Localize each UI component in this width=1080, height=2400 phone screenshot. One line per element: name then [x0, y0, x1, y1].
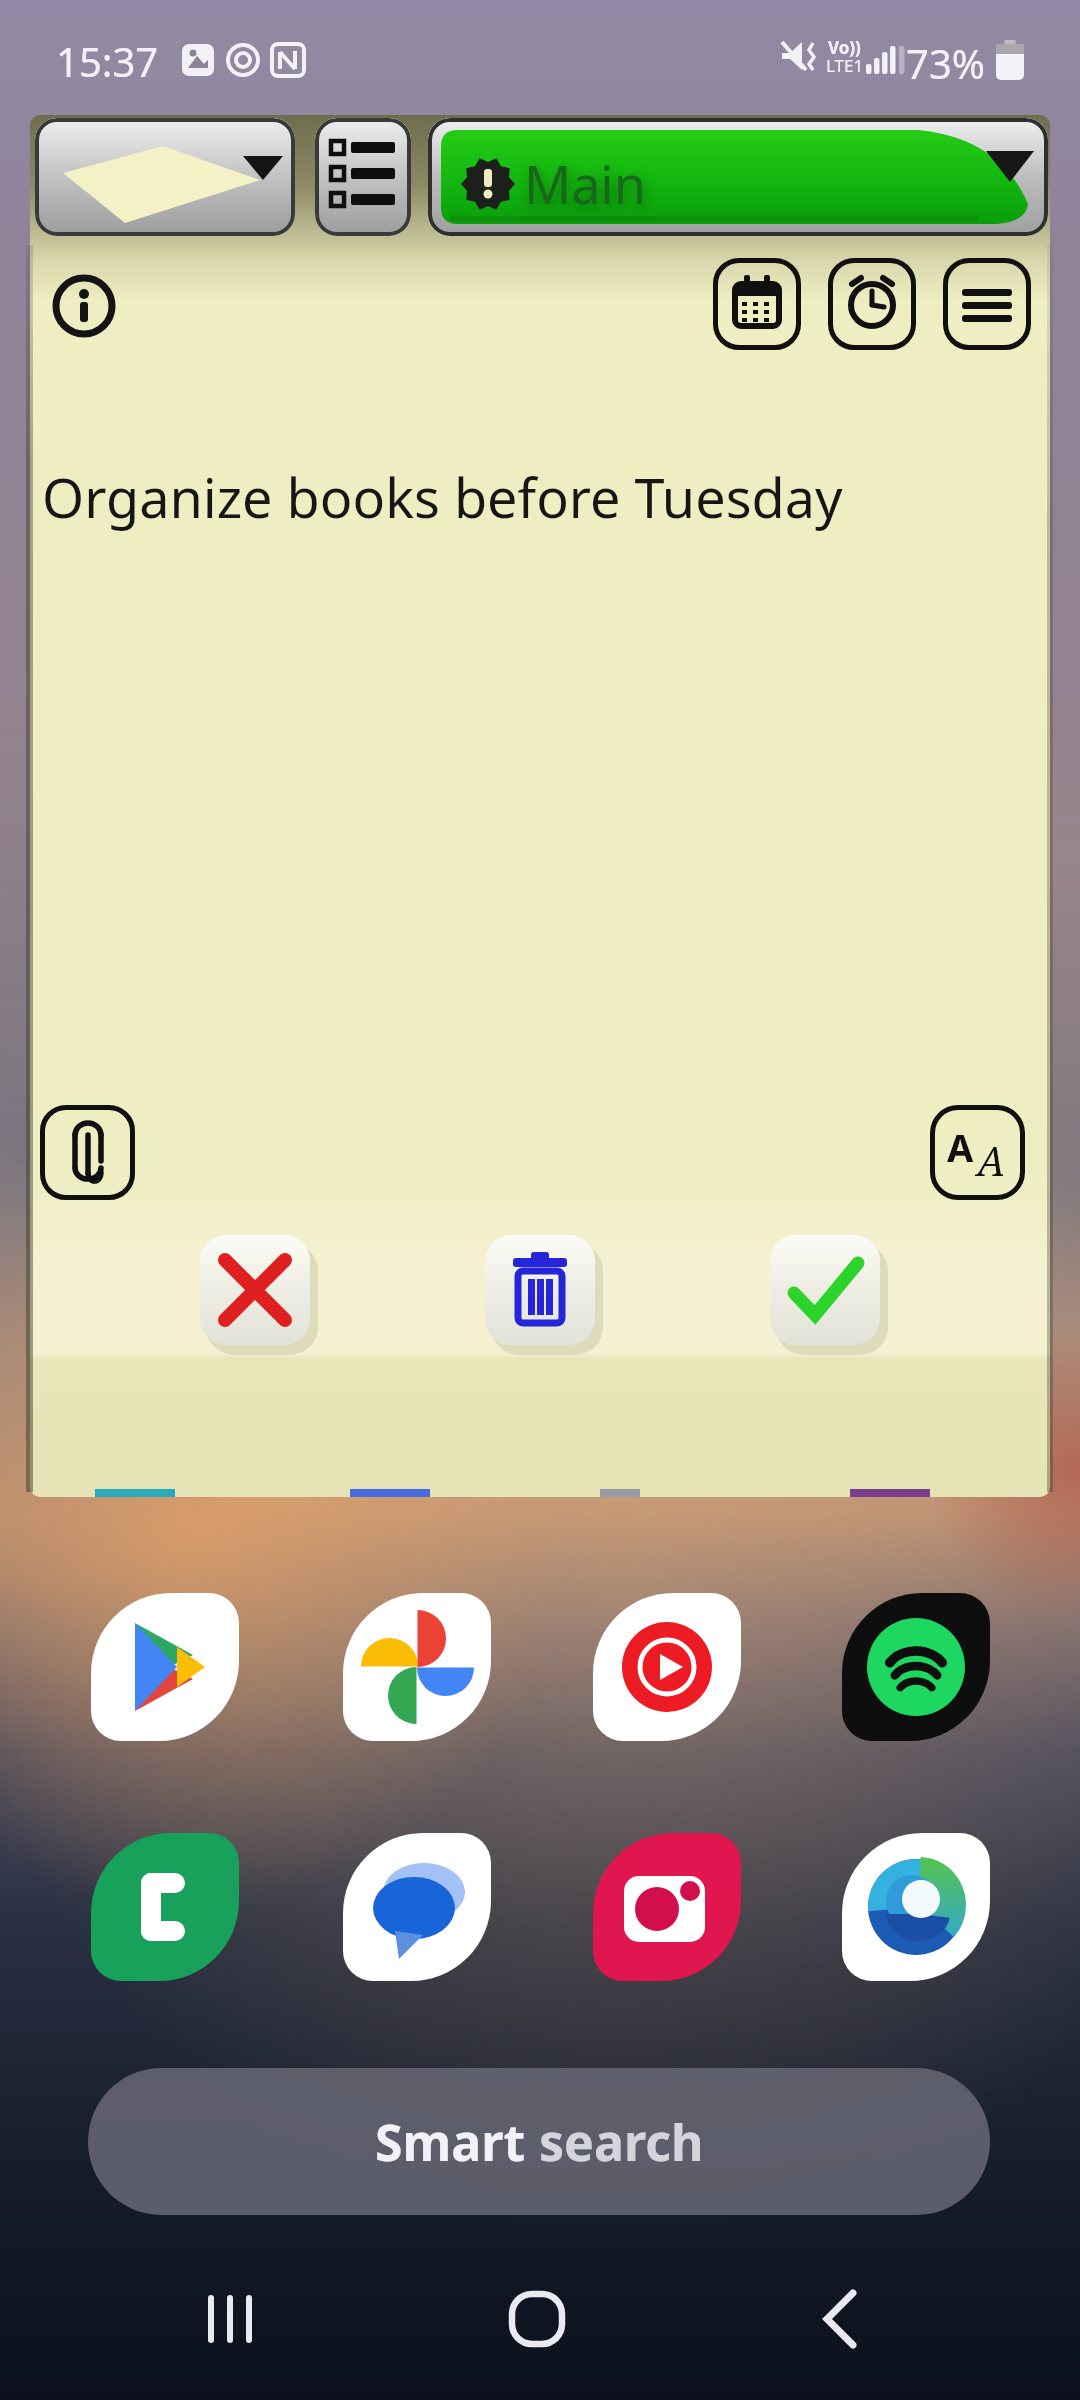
- button[interactable]: [943, 258, 1031, 350]
- button[interactable]: [593, 1593, 741, 1741]
- staticText: Smart: [375, 2108, 539, 2176]
- button[interactable]: [315, 118, 411, 236]
- button[interactable]: [46, 268, 122, 344]
- staticText: Organize books before Tuesday: [42, 460, 843, 534]
- button[interactable]: Main: [428, 118, 1048, 236]
- staticText: A: [947, 1121, 974, 1173]
- button[interactable]: [91, 1833, 239, 1981]
- staticText: Vo)): [828, 36, 861, 59]
- button[interactable]: [713, 258, 801, 350]
- button[interactable]: [842, 1833, 990, 1981]
- staticText: A: [977, 1133, 1006, 1187]
- button[interactable]: [35, 118, 295, 236]
- button[interactable]: [593, 1833, 741, 1981]
- button[interactable]: [343, 1833, 491, 1981]
- button[interactable]: [485, 1235, 595, 1345]
- staticText: Main: [524, 148, 646, 219]
- staticText: LTE1: [826, 54, 864, 77]
- button[interactable]: [40, 1105, 135, 1200]
- staticText: search: [539, 2108, 704, 2176]
- button[interactable]: [200, 1235, 310, 1345]
- button[interactable]: [91, 1593, 239, 1741]
- staticText: 73%: [906, 36, 985, 90]
- button[interactable]: [770, 1235, 880, 1345]
- button[interactable]: A: [930, 1105, 1025, 1200]
- button[interactable]: Smart: [88, 2068, 990, 2215]
- button[interactable]: [343, 1593, 491, 1741]
- button[interactable]: [785, 2285, 895, 2355]
- button[interactable]: [180, 2285, 290, 2355]
- button[interactable]: [483, 2285, 593, 2355]
- button[interactable]: [828, 258, 916, 350]
- staticText: 15:37: [56, 34, 159, 88]
- button[interactable]: [842, 1593, 990, 1741]
